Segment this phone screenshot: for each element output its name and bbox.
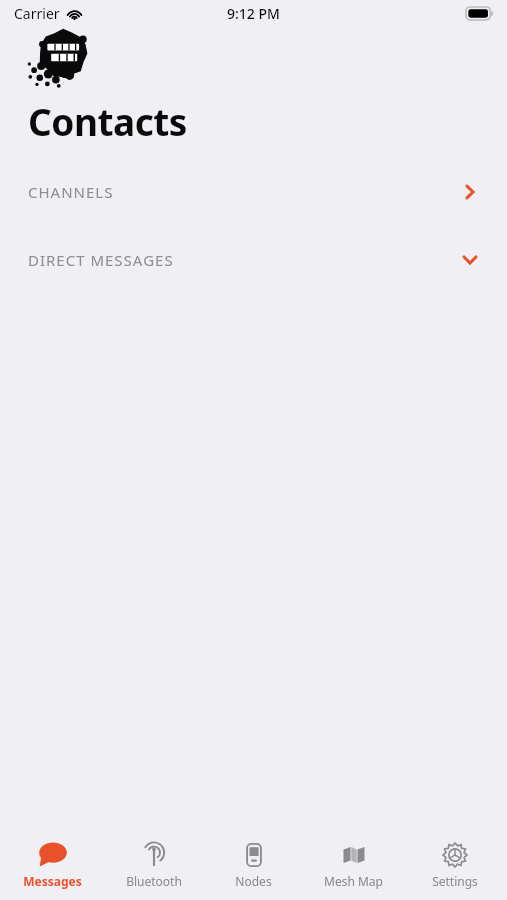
button[interactable]: Settings xyxy=(407,836,502,893)
button[interactable]: Nodes xyxy=(206,836,301,893)
button[interactable]: DIRECT MESSAGES xyxy=(0,238,507,282)
button[interactable]: Mesh Map xyxy=(306,836,401,893)
other: JellyNet logo xyxy=(26,28,100,92)
staticText: Nodes xyxy=(235,873,272,889)
staticText: DIRECT MESSAGES xyxy=(28,250,174,270)
staticText: 9:12 PM xyxy=(227,4,280,23)
staticText: Bluetooth xyxy=(126,873,182,889)
staticText: Settings xyxy=(432,873,478,889)
staticText: Mesh Map xyxy=(324,873,383,889)
button[interactable]: Messages xyxy=(5,836,100,893)
button[interactable]: Bluetooth xyxy=(106,836,201,893)
staticText: Contacts xyxy=(28,96,187,146)
staticText: Messages xyxy=(23,873,82,889)
staticText: Carrier xyxy=(14,4,60,23)
button[interactable]: CHANNELS xyxy=(0,170,507,214)
staticText: CHANNELS xyxy=(28,182,114,202)
